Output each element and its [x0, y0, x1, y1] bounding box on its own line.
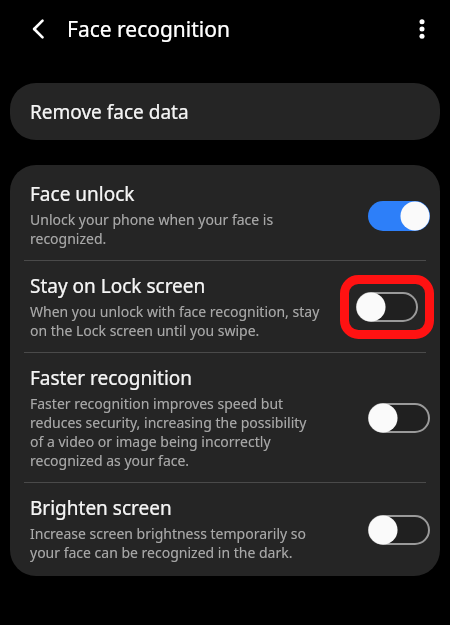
staticText: When you unlock with face recognition, s… — [30, 302, 320, 340]
staticText: Faster recognition — [30, 365, 193, 391]
button[interactable]: Faster recognition — [364, 398, 434, 438]
button[interactable]: Brighten screen — [364, 510, 434, 550]
button[interactable]: Face unlock — [10, 171, 440, 260]
button[interactable]: More options — [398, 5, 446, 53]
staticText: Faster recognition improves speed but re… — [30, 394, 307, 470]
button[interactable]: Remove face data — [10, 83, 440, 140]
button[interactable]: Faster recognition — [10, 353, 440, 482]
button[interactable]: Stay on Lock screen — [352, 287, 422, 327]
button[interactable]: Stay on Lock screen — [10, 261, 440, 352]
staticText: Increase screen brightness temporarily s… — [30, 524, 306, 562]
staticText: Brighten screen — [30, 495, 172, 521]
staticText: Unlock your phone when your face is reco… — [30, 210, 274, 248]
staticText: Stay on Lock screen — [30, 273, 206, 299]
button[interactable]: Brighten screen — [10, 483, 440, 576]
staticText: Face unlock — [30, 181, 135, 207]
staticText: Face recognition — [67, 15, 230, 44]
button[interactable]: Back — [15, 5, 63, 53]
staticText: Remove face data — [30, 99, 189, 125]
button[interactable]: Face unlock — [364, 196, 434, 236]
